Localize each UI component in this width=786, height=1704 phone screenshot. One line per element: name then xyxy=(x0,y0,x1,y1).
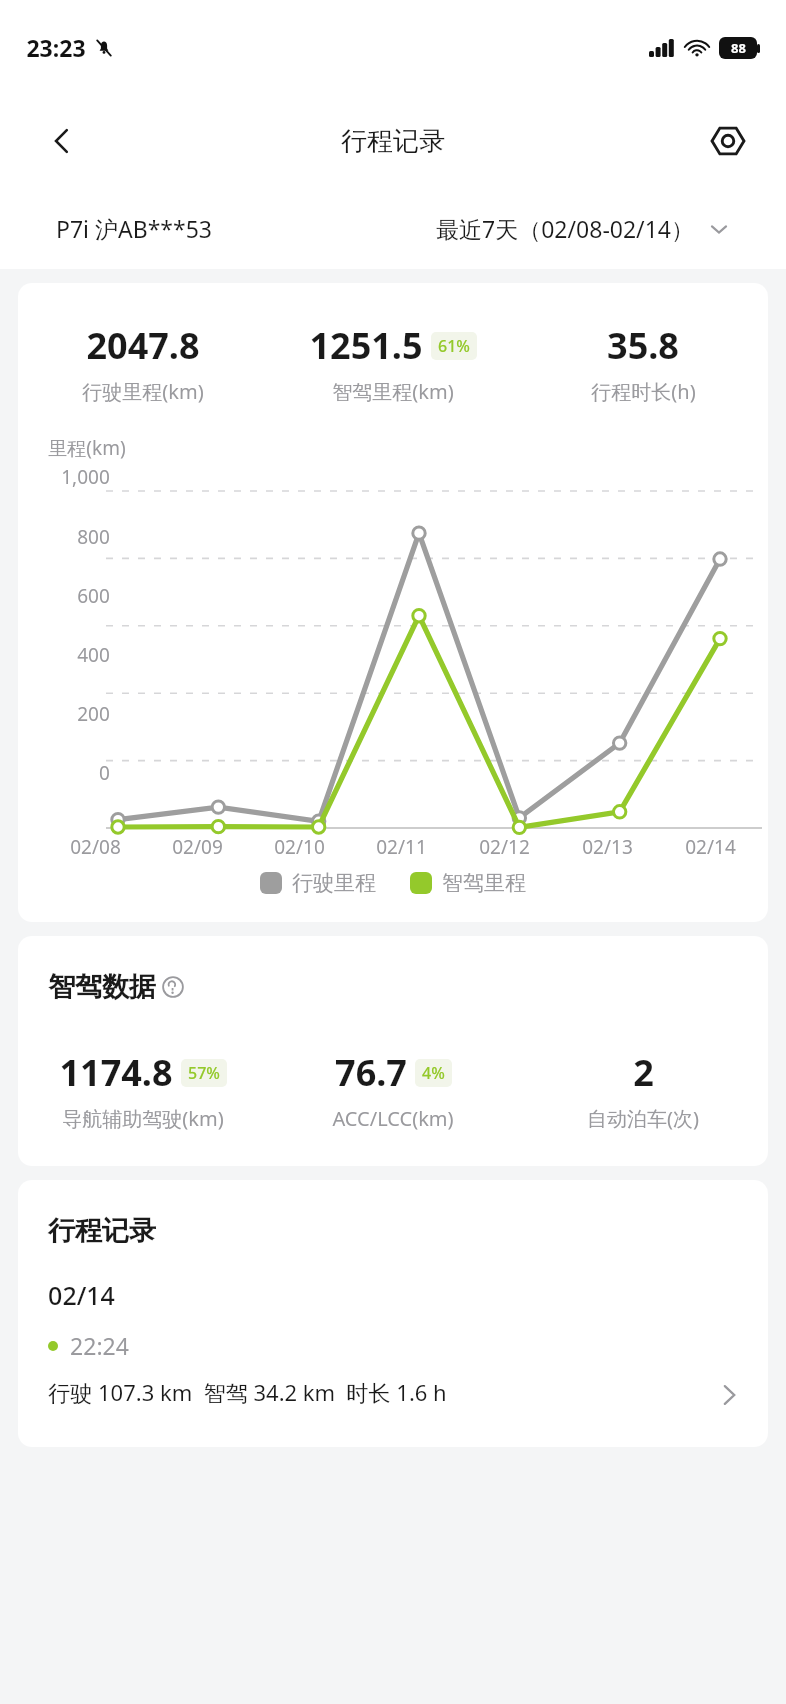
staticText: P7i 沪AB***53 xyxy=(56,213,212,244)
staticText: 02/09 xyxy=(172,834,223,860)
staticText: 22:24 xyxy=(70,1330,129,1361)
button[interactable]: Back xyxy=(38,117,86,165)
button[interactable]: 最近7天（02/08-02/14） xyxy=(436,213,730,244)
staticText: 自动泊车(次) xyxy=(587,1105,699,1132)
staticText: 35.8 xyxy=(607,321,679,370)
staticText: 最近7天（02/08-02/14） xyxy=(436,213,694,244)
staticText: 1251.5 xyxy=(309,321,423,370)
staticText: 57% xyxy=(188,1062,220,1084)
staticText: 行程时长(h) xyxy=(591,378,696,405)
staticText: 智驾里程(km) xyxy=(332,378,454,405)
staticText: 02/12 xyxy=(479,834,530,860)
staticText: 行驶里程(km) xyxy=(82,378,204,405)
staticText: 1,000 xyxy=(61,464,110,490)
button[interactable]: 行驶里程 xyxy=(260,870,376,896)
staticText: 02/10 xyxy=(274,834,325,860)
staticText: 导航辅助驾驶(km) xyxy=(62,1105,224,1132)
staticText: 02/13 xyxy=(582,834,633,860)
staticText: 2047.8 xyxy=(86,321,200,370)
staticText: 800 xyxy=(77,524,110,550)
staticText: 76.7 xyxy=(335,1048,407,1097)
staticText: ACC/LCC(km) xyxy=(332,1105,454,1132)
staticText: 行驶 107.3 km 智驾 34.2 km 时长 1.6 h xyxy=(48,1377,447,1407)
staticText: 02/14 xyxy=(48,1278,115,1312)
staticText: 行程记录 xyxy=(48,1214,156,1248)
button[interactable]: 22:24 xyxy=(18,1330,768,1407)
staticText: 0 xyxy=(99,760,110,786)
button[interactable]: 智驾里程 xyxy=(410,870,526,896)
staticText: 2 xyxy=(633,1048,654,1097)
button[interactable]: Settings xyxy=(704,117,752,165)
staticText: 行驶里程 xyxy=(292,870,376,896)
staticText: 4% xyxy=(422,1062,445,1084)
staticText: 02/08 xyxy=(70,834,121,860)
staticText: 行程记录 xyxy=(341,125,445,158)
button[interactable]: 智驾数据 xyxy=(48,970,184,1004)
staticText: 61% xyxy=(438,335,470,357)
staticText: 1174.8 xyxy=(59,1048,173,1097)
staticText: 里程(km) xyxy=(48,435,126,461)
staticText: 智驾数据 xyxy=(48,970,156,1004)
staticText: 400 xyxy=(77,642,110,668)
staticText: 智驾里程 xyxy=(442,870,526,896)
staticText: 02/14 xyxy=(685,834,736,860)
staticText: 88 xyxy=(731,39,746,57)
staticText: 200 xyxy=(77,701,110,727)
staticText: 600 xyxy=(77,583,110,609)
staticText: 02/11 xyxy=(376,834,427,860)
staticText: 23:23 xyxy=(26,32,86,63)
